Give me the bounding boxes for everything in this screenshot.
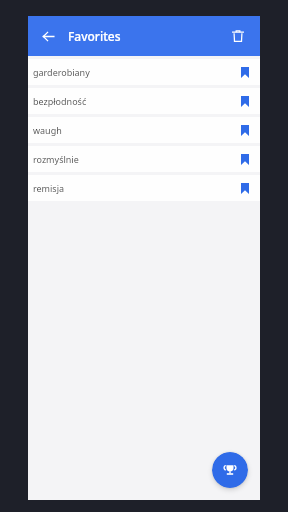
staticText: Favorites (68, 28, 121, 44)
button[interactable]: Remove from favorites (235, 91, 255, 111)
button[interactable]: Remove from favorites (235, 149, 255, 169)
button[interactable]: remisja (28, 175, 260, 201)
staticText: rozmyślnie (33, 153, 235, 165)
button[interactable]: Navigate up (34, 22, 62, 50)
button[interactable]: bezpłodność (28, 88, 260, 114)
button[interactable]: garderobiany (28, 59, 260, 85)
staticText: garderobiany (33, 66, 235, 78)
button[interactable]: Remove from favorites (235, 120, 255, 140)
staticText: waugh (33, 124, 235, 136)
button[interactable]: Remove from favorites (235, 178, 255, 198)
staticText: bezpłodność (33, 95, 235, 107)
staticText: remisja (33, 182, 235, 194)
button[interactable]: Remove from favorites (235, 62, 255, 82)
button[interactable]: Delete all favorites (224, 22, 252, 50)
button[interactable]: Achievements (212, 452, 248, 488)
button[interactable]: waugh (28, 117, 260, 143)
button[interactable]: rozmyślnie (28, 146, 260, 172)
